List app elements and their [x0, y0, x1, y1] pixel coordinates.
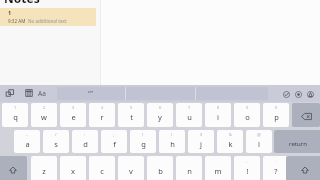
button[interactable]: m: [205, 156, 231, 180]
button[interactable]: b: [147, 156, 173, 180]
staticText: $: [200, 132, 203, 137]
button[interactable]: x: [60, 156, 86, 180]
staticText: &: [229, 132, 232, 137]
staticText: d: [83, 139, 88, 149]
staticText: o: [245, 112, 250, 122]
staticText: b: [158, 166, 163, 176]
staticText: e: [71, 112, 76, 122]
staticText: p: [274, 112, 279, 122]
staticText: s: [54, 139, 58, 149]
staticText: :: [84, 132, 86, 137]
staticText: w: [41, 112, 47, 122]
staticText: ,: [246, 158, 248, 163]
button[interactable]: [286, 156, 320, 180]
staticText: 9: [246, 105, 249, 110]
button[interactable]: Camera: [295, 91, 302, 98]
staticText: 1: [14, 105, 17, 110]
staticText: h: [170, 139, 175, 149]
button[interactable]: “”: [57, 87, 125, 100]
staticText: 2: [43, 105, 46, 110]
staticText: No additional text: [28, 18, 67, 24]
staticText: .: [275, 158, 277, 163]
button[interactable]: 5: [118, 103, 144, 127]
button[interactable]: 6: [147, 103, 173, 127]
staticText: 7: [188, 105, 191, 110]
button[interactable]: z: [31, 156, 57, 180]
button[interactable]: Paste: [6, 89, 14, 97]
button[interactable]: &: [217, 130, 243, 153]
staticText: i: [217, 112, 219, 122]
button[interactable]: 9: [234, 103, 260, 127]
staticText: y: [158, 112, 162, 122]
staticText: ;: [113, 132, 115, 137]
staticText: -: [26, 132, 28, 137]
button[interactable]: 0: [263, 103, 289, 127]
staticText: 4: [101, 105, 104, 110]
staticText: c: [100, 166, 104, 176]
staticText: m: [214, 166, 222, 176]
staticText: return: [289, 140, 307, 148]
button[interactable]: n: [176, 156, 202, 180]
staticText: f: [113, 139, 116, 149]
button[interactable]: [292, 103, 320, 127]
staticText: t: [130, 112, 133, 122]
staticText: 6: [159, 105, 162, 110]
button[interactable]: Checklist: [283, 91, 290, 98]
staticText: n: [187, 166, 192, 176]
staticText: !: [246, 166, 249, 176]
button[interactable]: return: [274, 130, 320, 153]
button[interactable]: 1: [0, 8, 96, 26]
staticText: “”: [88, 89, 94, 99]
staticText: ): [171, 132, 173, 137]
staticText: 1: [8, 9, 12, 16]
staticText: r: [100, 112, 104, 122]
staticText: u: [187, 112, 192, 122]
button[interactable]: 7: [176, 103, 202, 127]
staticText: q: [13, 112, 18, 122]
button[interactable]: c: [89, 156, 115, 180]
button[interactable]: -: [14, 130, 40, 153]
staticText: k: [228, 139, 233, 149]
button[interactable]: Table: [25, 89, 33, 97]
button[interactable]: 2: [31, 103, 57, 127]
button[interactable]: 1: [2, 103, 28, 127]
staticText: v: [129, 166, 133, 176]
button[interactable]: :: [72, 130, 98, 153]
button[interactable]: @: [246, 130, 272, 153]
staticText: 5: [130, 105, 133, 110]
staticText: x: [71, 166, 75, 176]
button[interactable]: (: [130, 130, 156, 153]
button[interactable]: /: [43, 130, 69, 153]
staticText: 3: [72, 105, 75, 110]
staticText: z: [42, 166, 46, 176]
button[interactable]: ;: [101, 130, 127, 153]
staticText: (: [142, 132, 144, 137]
button[interactable]: Aa: [37, 88, 47, 98]
button[interactable]: v: [118, 156, 144, 180]
staticText: ?: [274, 166, 278, 176]
staticText: j: [200, 139, 202, 149]
button[interactable]: [0, 156, 27, 180]
staticText: 0: [275, 105, 278, 110]
button[interactable]: 4: [89, 103, 115, 127]
staticText: g: [141, 139, 146, 149]
button[interactable]: 8: [205, 103, 231, 127]
staticText: Aa: [38, 89, 46, 98]
button[interactable]: ): [159, 130, 185, 153]
button[interactable]: ,: [234, 156, 260, 180]
button[interactable]: $: [188, 130, 214, 153]
staticText: a: [25, 139, 30, 149]
staticText: l: [258, 139, 260, 149]
button[interactable]: .: [263, 156, 289, 180]
staticText: 8: [217, 105, 220, 110]
staticText: @: [257, 132, 261, 137]
staticText: Notes: [4, 0, 40, 6]
staticText: /: [55, 132, 57, 137]
staticText: 9:32 AM: [8, 18, 26, 24]
button[interactable]: 3: [60, 103, 86, 127]
button[interactable]: Markup: [307, 91, 314, 98]
